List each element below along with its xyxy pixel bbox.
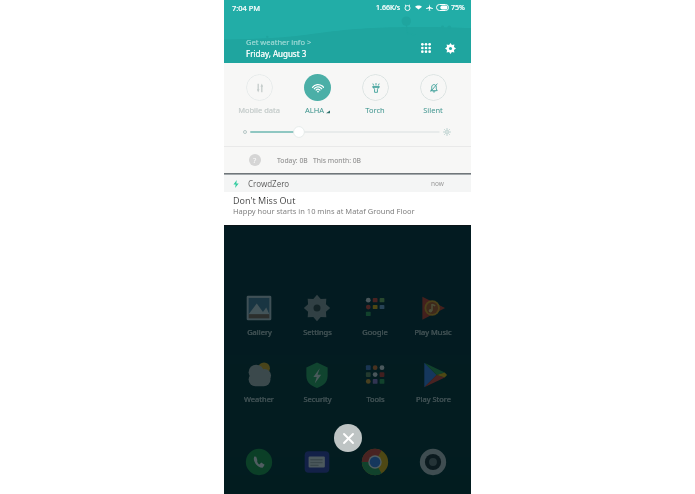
staticText: CrowdZero bbox=[248, 178, 290, 189]
staticText: Friday, August 3 bbox=[246, 48, 307, 59]
staticText: Don't Miss Out bbox=[233, 194, 296, 206]
button[interactable]: Get weather info > bbox=[246, 37, 312, 59]
staticText: Security bbox=[303, 394, 332, 404]
button[interactable]: Play Store bbox=[407, 361, 459, 404]
button[interactable]: Play Music bbox=[407, 294, 459, 337]
button[interactable]: Torch bbox=[347, 74, 403, 115]
button[interactable]: Weather bbox=[233, 361, 285, 404]
staticText: 75% bbox=[451, 3, 465, 13]
button[interactable]: Settings bbox=[440, 38, 460, 58]
staticText: now bbox=[431, 179, 444, 188]
staticText: Play Store bbox=[416, 394, 451, 404]
button[interactable]: ? bbox=[249, 147, 471, 173]
staticText: Gallery bbox=[247, 327, 272, 337]
button[interactable]: Google bbox=[349, 294, 401, 337]
staticText: Get weather info > bbox=[246, 37, 312, 47]
staticText: ? bbox=[253, 155, 257, 165]
staticText: Settings bbox=[303, 327, 332, 337]
button[interactable]: CrowdZero bbox=[224, 175, 471, 225]
staticText: Weather bbox=[244, 394, 274, 404]
staticText: Torch bbox=[365, 105, 385, 115]
button[interactable]: Phone bbox=[245, 448, 273, 476]
button[interactable]: Security bbox=[291, 361, 343, 404]
staticText: Mobile data bbox=[238, 105, 280, 115]
staticText: Google bbox=[362, 327, 388, 337]
staticText: Today: 0B This month: 0B bbox=[277, 156, 362, 165]
button[interactable]: Tools bbox=[349, 361, 401, 404]
button[interactable]: Settings bbox=[291, 294, 343, 337]
button[interactable]: Camera bbox=[419, 448, 447, 476]
button[interactable] bbox=[243, 126, 451, 138]
staticText: 1.66K/s bbox=[376, 3, 401, 13]
staticText: ALHA bbox=[305, 105, 325, 115]
button[interactable]: Close bbox=[334, 424, 362, 452]
button[interactable]: ALHA bbox=[289, 74, 345, 115]
button[interactable]: Messages bbox=[303, 448, 331, 476]
button[interactable]: Silent bbox=[405, 74, 461, 115]
button[interactable]: Chrome bbox=[361, 448, 389, 476]
button[interactable]: Mobile data bbox=[231, 74, 287, 115]
staticText: Play Music bbox=[414, 327, 452, 337]
staticText: Happy hour starts in 10 mins at Mataf Gr… bbox=[233, 206, 415, 216]
button[interactable]: Gallery bbox=[233, 294, 285, 337]
staticText: 7:04 PM bbox=[232, 3, 261, 13]
staticText: Silent bbox=[423, 105, 443, 115]
staticText: Tools bbox=[366, 394, 385, 404]
button[interactable]: All apps bbox=[416, 38, 436, 58]
